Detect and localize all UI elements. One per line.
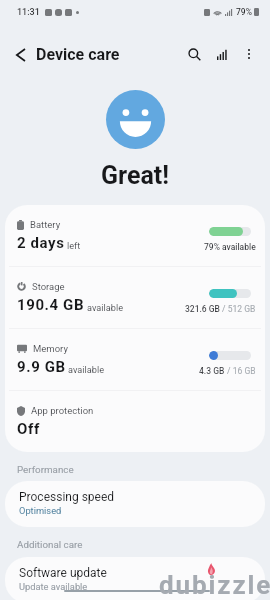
staticText: Update available — [19, 581, 88, 592]
staticText: 190.4 GB — [17, 296, 85, 314]
staticText: 4.3 GB — [199, 366, 225, 376]
staticText: Software update — [19, 566, 107, 580]
staticText: 79% available — [204, 242, 256, 252]
staticText: App protection — [31, 405, 94, 416]
staticText: 321.6 GB — [185, 304, 220, 314]
staticText: 2 days — [17, 234, 65, 252]
staticText: / 512 GB — [220, 304, 256, 314]
button[interactable]: Battery — [5, 205, 265, 266]
button[interactable]: Back — [10, 44, 31, 65]
staticText: Performance — [17, 464, 74, 475]
staticText: Processing speed — [19, 490, 115, 504]
staticText: / 16 GB — [225, 366, 256, 376]
staticText: dubizzle — [159, 570, 270, 600]
button[interactable]: Memory — [5, 329, 265, 390]
staticText: Optimised — [19, 505, 62, 516]
staticText: available — [68, 364, 105, 375]
staticText: Device care — [36, 45, 120, 64]
staticText: Great! — [101, 161, 170, 190]
button[interactable]: Search — [181, 41, 207, 67]
staticText: 9.9 GB — [17, 358, 66, 376]
button[interactable]: Processing speed — [5, 481, 265, 527]
button[interactable]: More options — [236, 41, 262, 67]
staticText: Battery — [30, 219, 61, 230]
staticText: 11:31 — [17, 7, 40, 18]
button[interactable]: Storage — [5, 267, 265, 328]
button[interactable]: Usage statistics — [209, 41, 235, 67]
staticText: Memory — [33, 343, 68, 354]
staticText: Additional care — [17, 539, 83, 550]
button[interactable]: App protection — [5, 391, 265, 452]
button[interactable]: Software update — [5, 557, 265, 600]
staticText: Off — [17, 420, 40, 438]
staticText: available — [87, 302, 124, 313]
staticText: left — [67, 240, 81, 251]
staticText: Storage — [32, 281, 65, 292]
staticText: 79% — [236, 7, 252, 17]
